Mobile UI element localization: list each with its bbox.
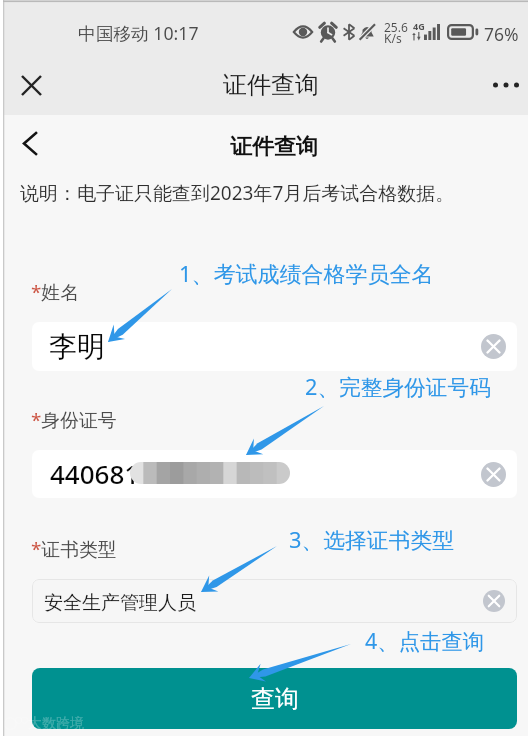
staticText: K/s	[384, 30, 402, 46]
button[interactable]: 查询	[32, 668, 517, 729]
staticText: 25.6	[384, 19, 408, 35]
button[interactable]: Clear text	[481, 334, 506, 359]
staticText: 李明	[49, 329, 105, 364]
staticText: 76%	[484, 22, 519, 46]
staticText: 1、考试成绩合格学员全名	[179, 258, 434, 288]
staticText: *姓名	[31, 279, 79, 305]
button[interactable]: Back	[8, 121, 52, 165]
staticText: 3、选择证书类型	[289, 525, 455, 555]
staticText: *证书类型	[31, 536, 117, 562]
staticText: 查询	[251, 684, 299, 714]
staticText: 证件查询	[223, 70, 319, 100]
button[interactable]	[32, 322, 517, 371]
staticText: 2、完整身份证号码	[305, 372, 491, 402]
staticText: 440681	[50, 456, 140, 491]
staticText: 4G	[413, 20, 425, 32]
staticText: 证件查询	[230, 133, 318, 161]
staticText: 4、点击查询	[365, 626, 485, 655]
button[interactable]: Clear text	[483, 590, 505, 612]
staticText: 安全生产管理人员	[44, 591, 196, 615]
button[interactable]: Clear text	[481, 462, 506, 487]
staticText: *身份证号	[31, 407, 117, 433]
button[interactable]	[32, 579, 517, 623]
staticText: 中国移动 10:17	[78, 21, 199, 45]
staticText: 大数跨境	[28, 715, 84, 733]
button[interactable]	[32, 450, 517, 498]
staticText: 说明：电子证只能查到2023年7月后考试合格数据。	[20, 180, 455, 206]
button[interactable]: Close	[9, 63, 53, 107]
button[interactable]: More options	[484, 63, 528, 107]
